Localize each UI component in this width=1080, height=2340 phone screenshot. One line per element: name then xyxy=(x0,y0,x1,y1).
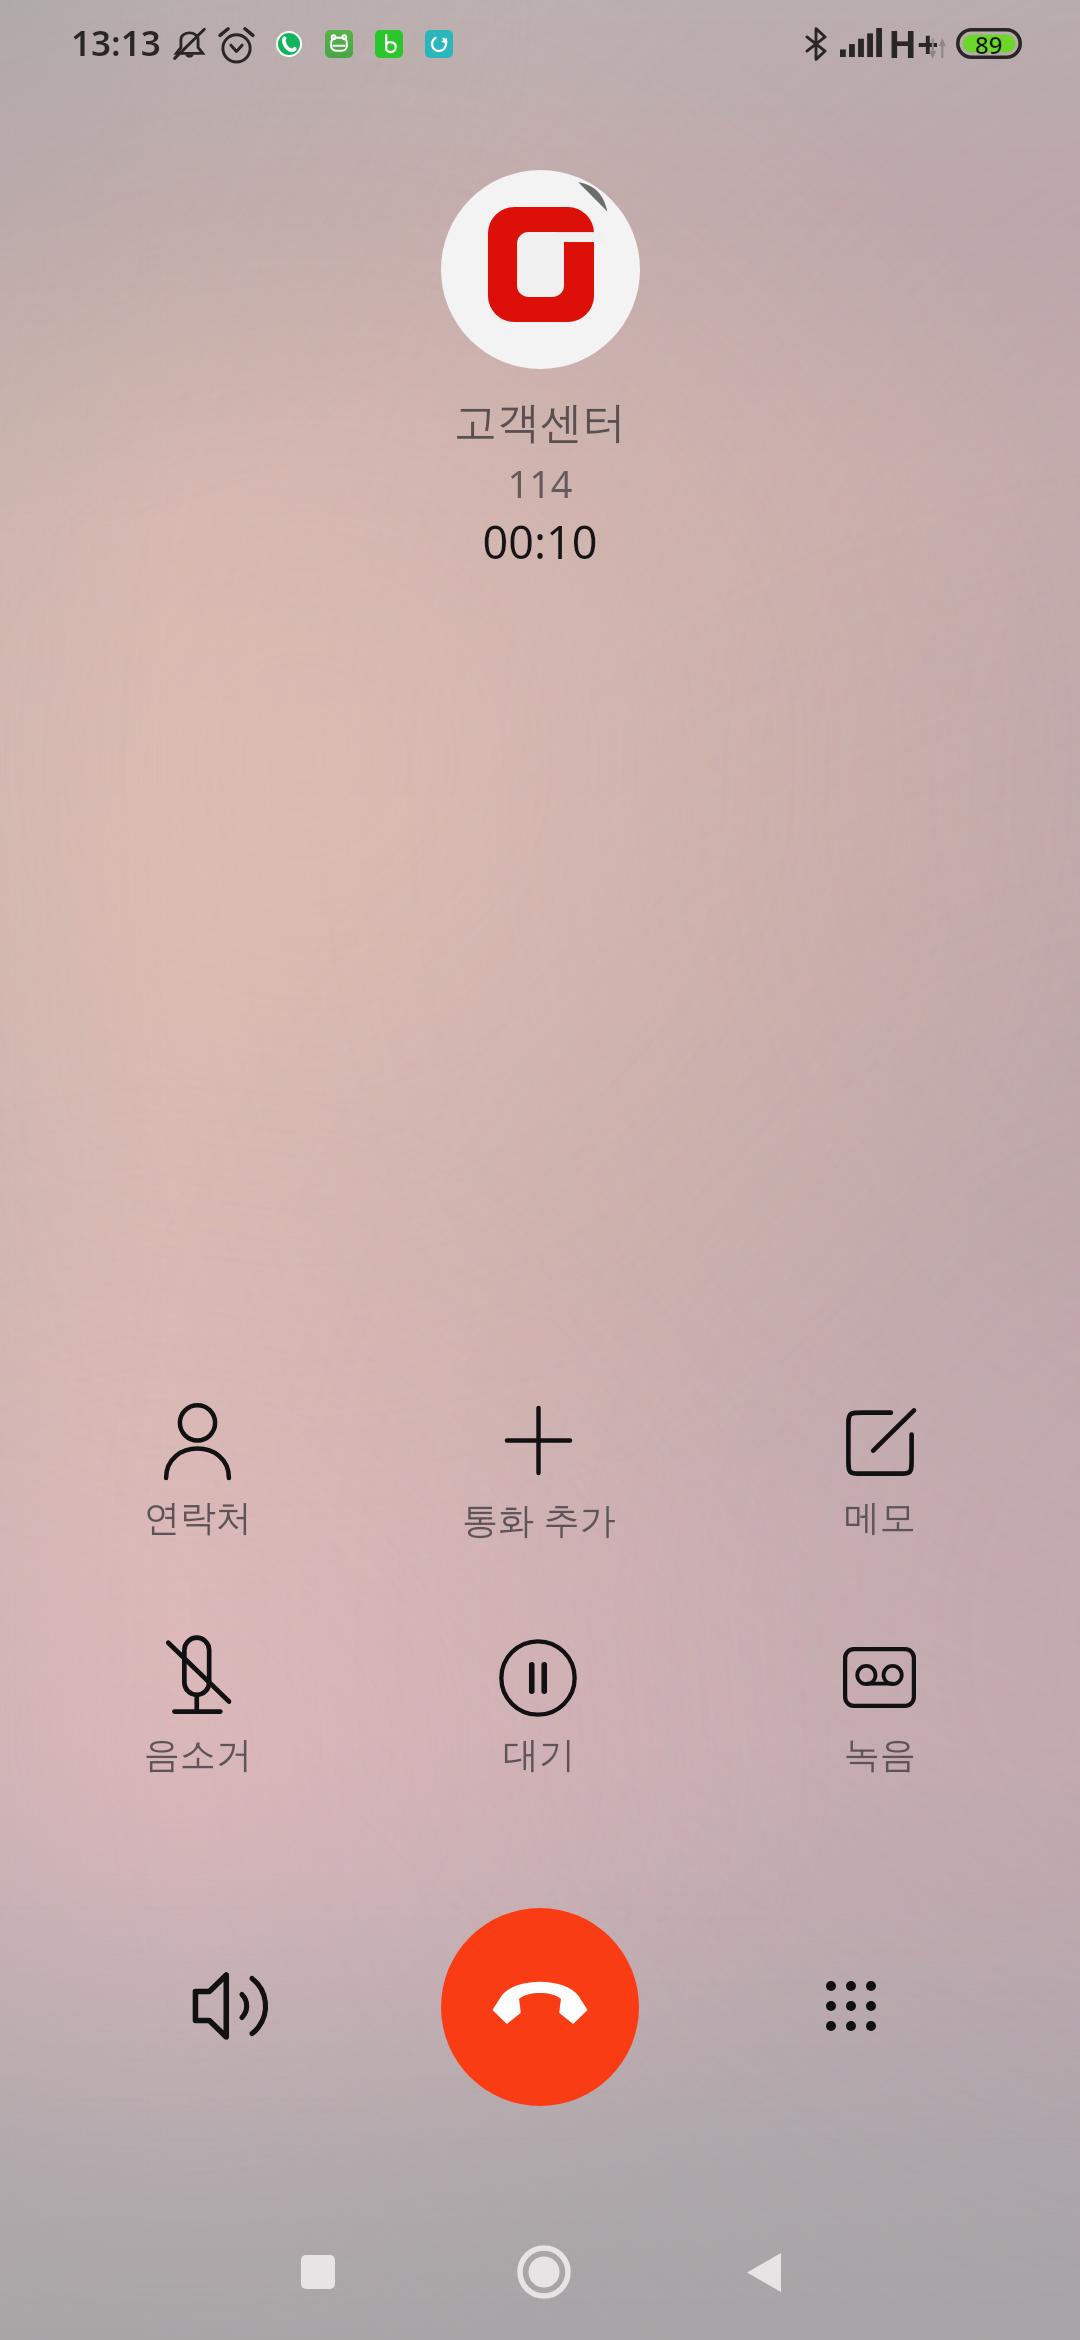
button[interactable]: 통화 추가 xyxy=(389,1382,689,1555)
button[interactable]: Keypad xyxy=(791,1946,911,2066)
button[interactable]: End call xyxy=(441,1908,639,2106)
button[interactable]: 메모 xyxy=(730,1383,1030,1555)
staticText: 연락처 xyxy=(144,1495,252,1540)
staticText: 대기 xyxy=(503,1732,575,1777)
staticText: 89 xyxy=(975,28,1003,59)
button[interactable]: Back xyxy=(724,2232,804,2312)
button[interactable]: Home xyxy=(504,2232,584,2312)
staticText: 통화 추가 xyxy=(462,1495,616,1544)
button[interactable]: 연락처 xyxy=(48,1378,348,1555)
button[interactable]: Recents xyxy=(278,2232,358,2312)
button[interactable]: 대기 xyxy=(389,1613,689,1792)
staticText: 13:13 xyxy=(71,19,161,67)
staticText: 114 xyxy=(507,457,573,509)
staticText: 음소거 xyxy=(144,1732,252,1777)
staticText: H+ xyxy=(888,17,939,69)
staticText: 메모 xyxy=(844,1495,916,1540)
button[interactable]: 녹음 xyxy=(730,1621,1030,1792)
staticText: 녹음 xyxy=(844,1732,916,1777)
staticText: 고객센터 xyxy=(454,396,626,450)
staticText: 00:10 xyxy=(482,511,598,572)
button[interactable]: Speaker xyxy=(170,1946,290,2066)
button[interactable]: 음소거 xyxy=(48,1610,348,1792)
